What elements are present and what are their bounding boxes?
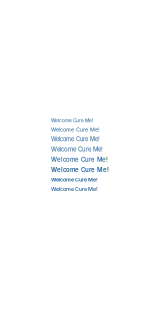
staticText: Welcome Cure Me! [51, 136, 100, 143]
staticText: Welcome Cure Me! [51, 146, 103, 153]
staticText: Welcome Cure Me! [51, 166, 109, 173]
staticText: Welcome Cure Me! [51, 126, 100, 133]
staticText: Welcome Cure Me! [51, 118, 93, 123]
staticText: Welcome Cure Me! [51, 186, 98, 192]
staticText: Welcome Cure Me! [51, 176, 98, 183]
staticText: Welcome Cure Me! [51, 156, 108, 163]
